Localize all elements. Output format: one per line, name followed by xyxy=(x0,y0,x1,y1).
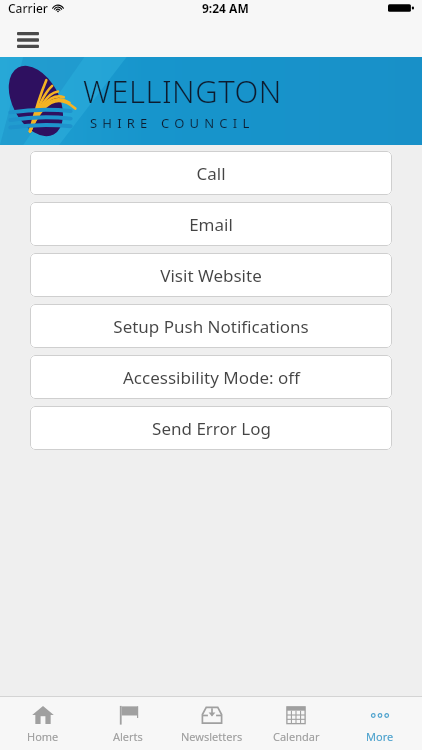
staticText: Email xyxy=(189,213,233,236)
button[interactable]: Visit Website xyxy=(30,253,392,297)
staticText: Calendar xyxy=(273,729,320,744)
staticText: Setup Push Notifications xyxy=(113,315,309,338)
button[interactable]: Setup Push Notifications xyxy=(30,304,392,348)
staticText: Visit Website xyxy=(160,264,262,287)
staticText: Send Error Log xyxy=(152,417,271,440)
button[interactable]: Call xyxy=(30,151,392,195)
staticText: Newsletters xyxy=(181,729,243,744)
staticText: SHIRE COUNCIL xyxy=(90,114,255,132)
button[interactable]: Accessibility Mode: off xyxy=(30,355,392,399)
staticText: WELLINGTON xyxy=(83,70,282,112)
button[interactable]: Newsletters xyxy=(170,697,254,750)
staticText: Alerts xyxy=(113,729,143,744)
button[interactable]: More xyxy=(338,697,422,750)
staticText: More xyxy=(366,729,394,744)
staticText: 9:24 AM xyxy=(202,0,249,16)
button[interactable]: Send Error Log xyxy=(30,406,392,450)
staticText: Home xyxy=(27,729,59,744)
button[interactable]: Calendar xyxy=(254,697,338,750)
button[interactable]: Alerts xyxy=(85,697,170,750)
staticText: Carrier xyxy=(8,0,48,16)
staticText: Call xyxy=(196,162,226,185)
button[interactable]: Home xyxy=(0,697,85,750)
button[interactable]: Email xyxy=(30,202,392,246)
staticText: Accessibility Mode: off xyxy=(123,366,300,389)
button[interactable]: Menu xyxy=(10,22,46,57)
